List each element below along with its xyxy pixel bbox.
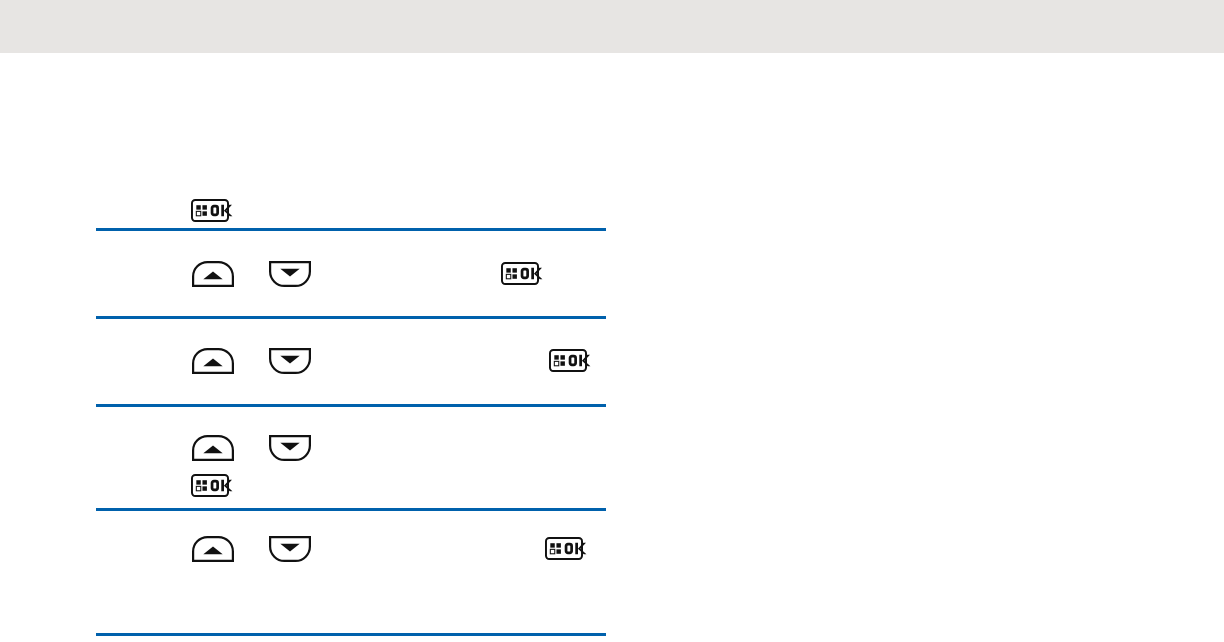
button[interactable]: Scroll up key <box>192 348 234 374</box>
button[interactable]: Menu OK key <box>501 262 539 285</box>
button[interactable]: Scroll down key <box>269 435 311 461</box>
button[interactable]: Menu OK key <box>549 349 587 372</box>
button[interactable]: Scroll down key <box>269 261 311 287</box>
button[interactable]: Menu OK key <box>191 474 229 497</box>
button[interactable]: Menu OK key <box>191 199 229 222</box>
button[interactable]: Scroll up key <box>192 435 234 461</box>
button[interactable]: Scroll up key <box>192 536 234 562</box>
button[interactable]: Menu OK key <box>545 537 583 560</box>
button[interactable]: Scroll down key <box>269 536 311 562</box>
button[interactable]: Scroll down key <box>269 348 311 374</box>
button[interactable]: Scroll up key <box>192 261 234 287</box>
